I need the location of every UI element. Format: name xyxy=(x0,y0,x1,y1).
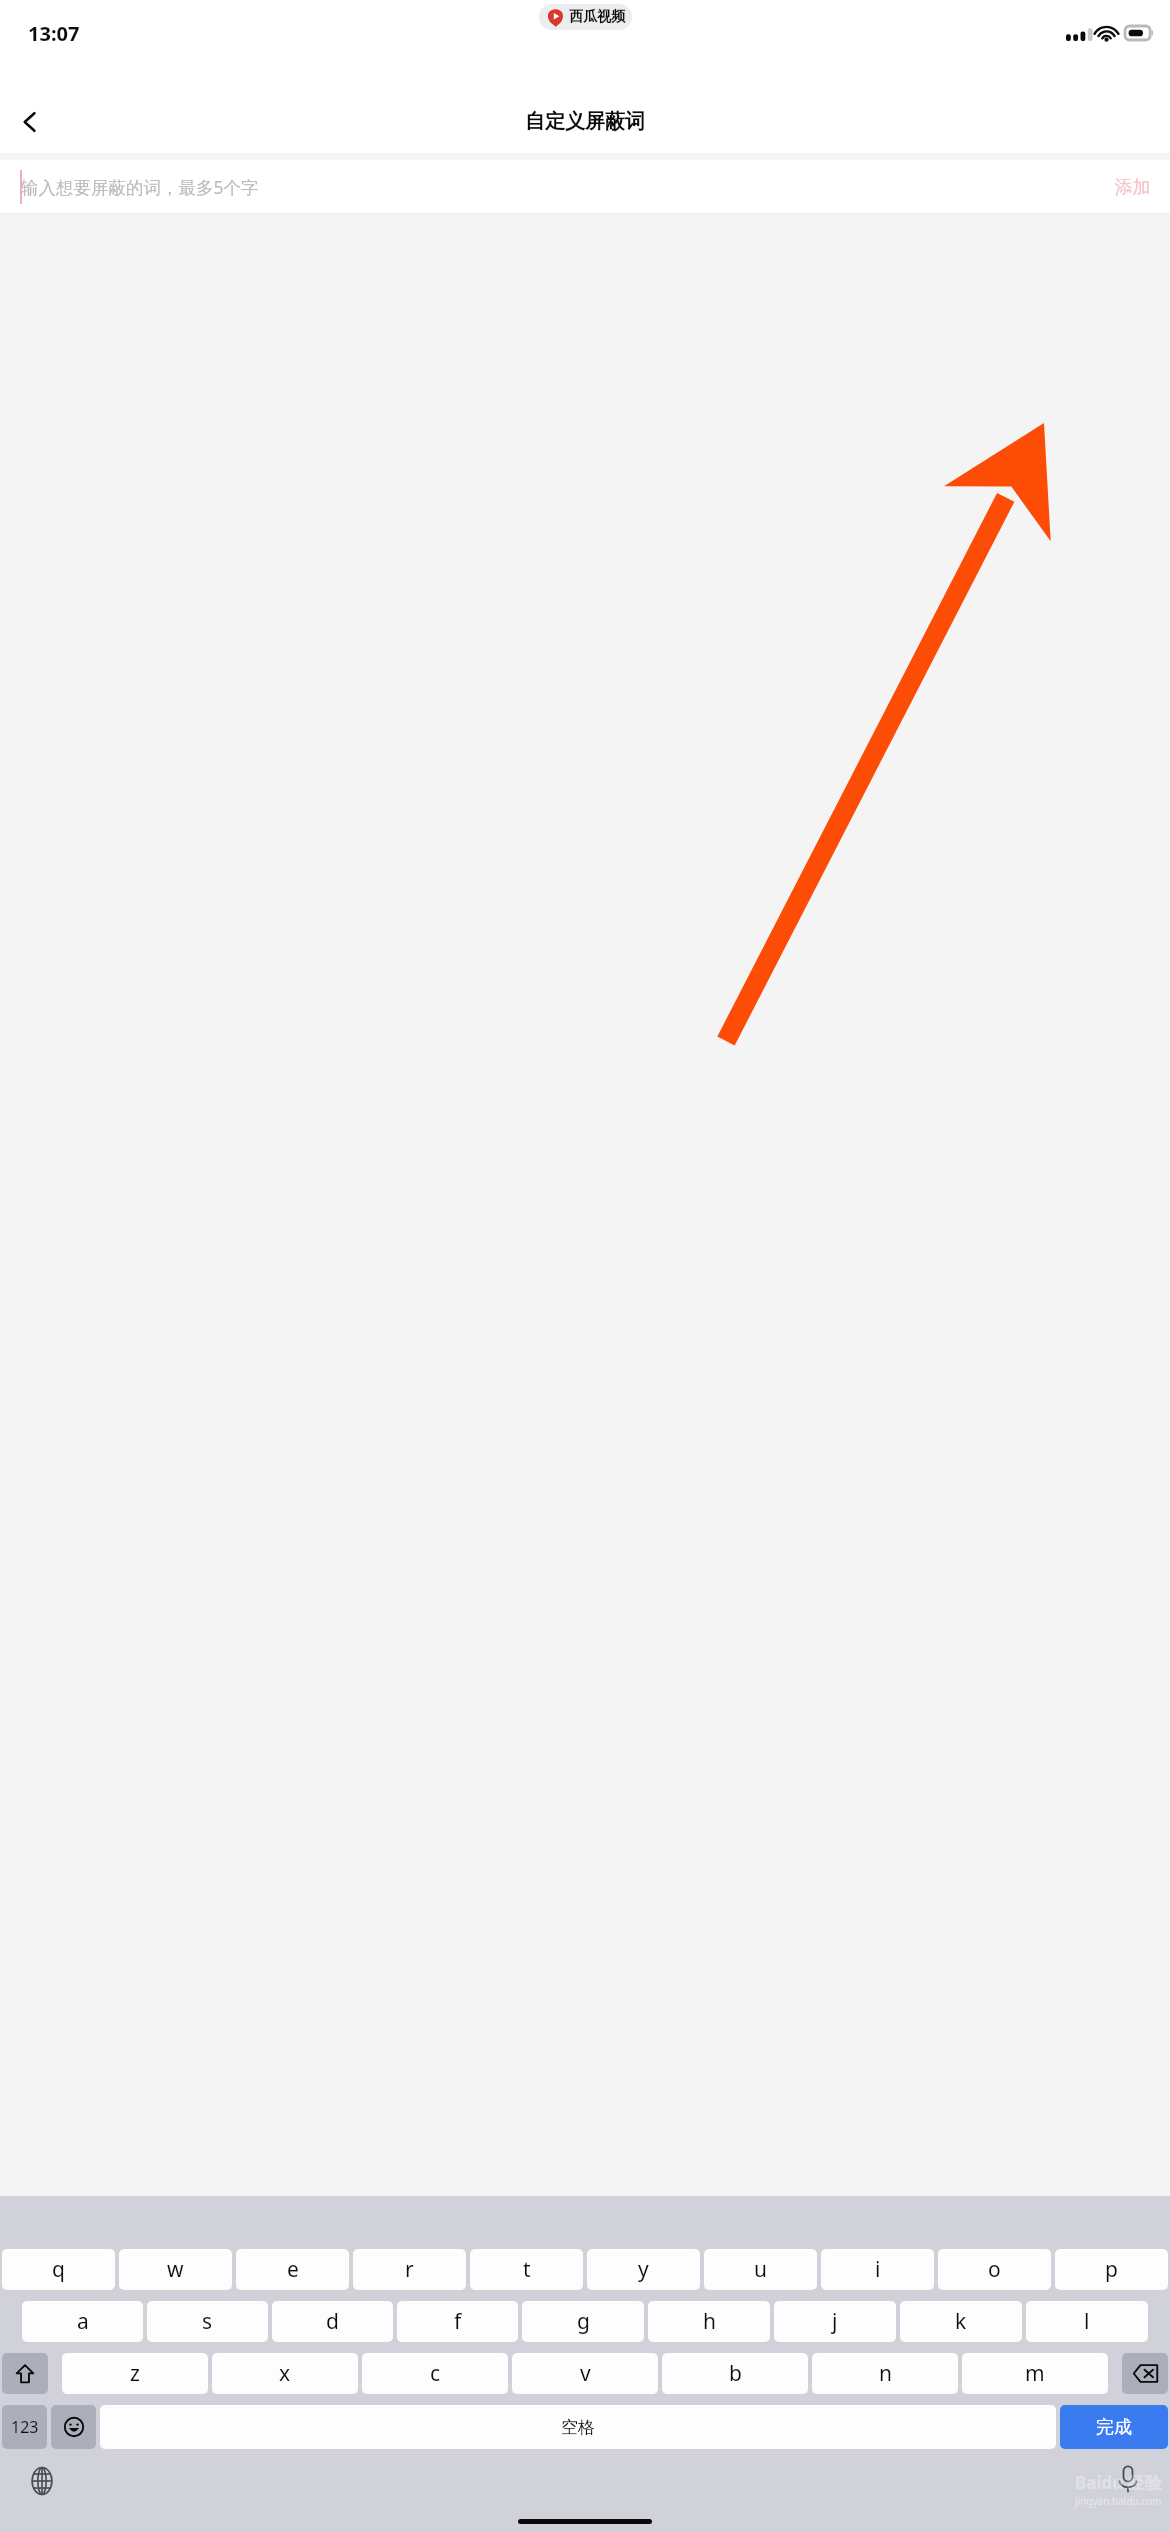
staticText: k xyxy=(955,2307,967,2336)
button[interactable]: 空格 xyxy=(100,2405,1056,2449)
staticText: f xyxy=(454,2307,462,2336)
staticText: 自定义屏蔽词 xyxy=(525,109,645,134)
button[interactable]: t xyxy=(470,2249,583,2290)
staticText: a xyxy=(77,2307,89,2336)
button[interactable]: p xyxy=(1055,2249,1168,2290)
staticText: 添加 xyxy=(1115,176,1150,198)
button[interactable]: k xyxy=(900,2301,1022,2342)
button[interactable]: Backspace xyxy=(1122,2353,1168,2394)
button[interactable]: v xyxy=(512,2353,658,2394)
staticText: i xyxy=(875,2255,881,2284)
staticText: b xyxy=(729,2359,742,2388)
staticText: n xyxy=(879,2359,892,2388)
staticText: u xyxy=(754,2255,767,2284)
button[interactable]: 添加 xyxy=(1095,160,1170,213)
staticText: s xyxy=(202,2307,213,2336)
staticText: c xyxy=(430,2359,441,2388)
button[interactable]: h xyxy=(648,2301,770,2342)
staticText: j xyxy=(832,2307,838,2336)
button[interactable]: 语音输入 xyxy=(1106,2457,1150,2501)
button[interactable]: j xyxy=(774,2301,896,2342)
button[interactable]: f xyxy=(397,2301,518,2342)
staticText: 西瓜视频 xyxy=(569,8,625,26)
button[interactable]: r xyxy=(353,2249,466,2290)
staticText: e xyxy=(287,2255,299,2284)
staticText: 13:07 xyxy=(28,20,80,47)
staticText: h xyxy=(703,2307,716,2336)
staticText: d xyxy=(326,2307,339,2336)
staticText: 123 xyxy=(11,2416,39,2438)
staticText: z xyxy=(130,2359,140,2388)
staticText: r xyxy=(405,2255,414,2284)
button[interactable]: a xyxy=(22,2301,143,2342)
staticText: v xyxy=(580,2359,591,2388)
staticText: 空格 xyxy=(561,2417,595,2438)
staticText: g xyxy=(577,2307,590,2336)
button[interactable]: i xyxy=(821,2249,934,2290)
button[interactable]: n xyxy=(812,2353,958,2394)
staticText: 完成 xyxy=(1096,2416,1132,2439)
button[interactable]: g xyxy=(522,2301,644,2342)
button[interactable]: c xyxy=(362,2353,508,2394)
button[interactable]: m xyxy=(962,2353,1108,2394)
staticText: m xyxy=(1025,2359,1045,2388)
button[interactable]: 切换语言 xyxy=(20,2459,64,2503)
button[interactable]: x xyxy=(212,2353,358,2394)
button[interactable]: u xyxy=(704,2249,817,2290)
button[interactable]: b xyxy=(662,2353,808,2394)
button[interactable]: s xyxy=(147,2301,268,2342)
button[interactable]: Emoji xyxy=(51,2405,96,2449)
staticText: y xyxy=(638,2255,649,2284)
button[interactable]: o xyxy=(938,2249,1051,2290)
button[interactable]: z xyxy=(62,2353,208,2394)
button[interactable]: d xyxy=(272,2301,393,2342)
button[interactable]: 123 xyxy=(2,2405,47,2449)
staticText: Baidu 经验 xyxy=(1075,2471,1162,2494)
button[interactable]: w xyxy=(119,2249,232,2290)
button[interactable]: 完成 xyxy=(1060,2405,1168,2449)
button[interactable]: y xyxy=(587,2249,700,2290)
staticText: w xyxy=(167,2255,184,2284)
button[interactable]: e xyxy=(236,2249,349,2290)
staticText: p xyxy=(1105,2255,1118,2284)
staticText: 输入想要屏蔽的词，最多5个字 xyxy=(21,175,259,199)
staticText: o xyxy=(988,2255,1001,2284)
staticText: t xyxy=(523,2255,531,2284)
button[interactable]: 返回 xyxy=(6,98,54,146)
staticText: q xyxy=(52,2255,65,2284)
button[interactable]: 西瓜视频 xyxy=(546,4,625,30)
staticText: jingyan.baidu.com xyxy=(1075,2494,1162,2508)
button[interactable]: q xyxy=(2,2249,115,2290)
staticText: x xyxy=(279,2359,291,2388)
button[interactable]: Shift xyxy=(2,2353,48,2394)
staticText: l xyxy=(1084,2307,1090,2336)
button[interactable]: l xyxy=(1026,2301,1148,2342)
